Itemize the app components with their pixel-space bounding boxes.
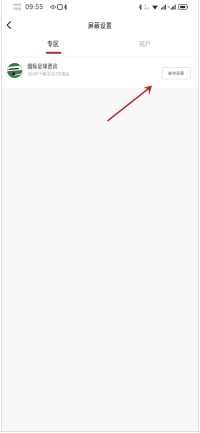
staticText: 中国联通	[13, 8, 21, 10]
staticText: 2.1	[144, 4, 146, 7]
staticText: 解除屏蔽	[168, 70, 184, 76]
button[interactable]: 专区	[7, 36, 99, 56]
staticText: 屏蔽设置	[88, 21, 112, 29]
staticText: 国际足球资讯	[27, 62, 57, 69]
button[interactable]: 用户	[99, 36, 191, 56]
staticText: 4G	[167, 6, 170, 8]
staticText: 专区	[47, 39, 59, 47]
button[interactable]: Back	[2, 14, 16, 36]
staticText: 18.9万个帖子 23.7万成员	[27, 71, 69, 77]
staticText: 中国联通	[13, 4, 21, 6]
staticText: K/s	[144, 7, 148, 10]
button[interactable]: 解除屏蔽	[162, 67, 191, 79]
staticText: 用户	[139, 39, 151, 47]
staticText: 09:55	[25, 3, 43, 11]
